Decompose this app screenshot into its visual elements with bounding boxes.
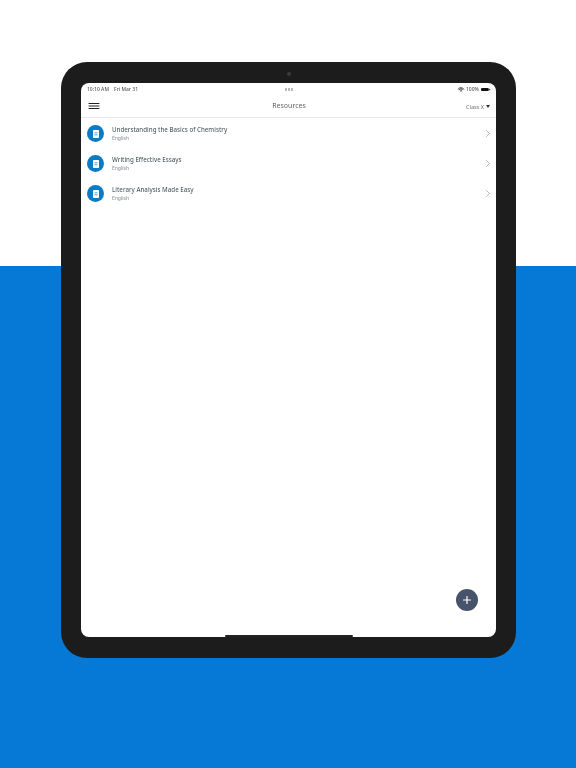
staticText: Resources <box>272 101 306 111</box>
button[interactable]: Literary Analysis Made Easy <box>81 178 496 208</box>
button[interactable]: Understanding the Basics of Chemistry <box>81 118 496 148</box>
staticText: Class X <box>466 103 484 110</box>
staticText: English <box>112 165 130 172</box>
staticText: Writing Effective Essays <box>112 155 182 163</box>
button[interactable]: Menu <box>85 97 103 115</box>
staticText: Understanding the Basics of Chemistry <box>112 125 228 133</box>
staticText: English <box>112 135 130 142</box>
staticText: Fri Mar 31 <box>114 86 138 93</box>
staticText: Literary Analysis Made Easy <box>112 185 194 193</box>
staticText: English <box>112 195 130 202</box>
button[interactable]: Writing Effective Essays <box>81 148 496 178</box>
button[interactable]: Class X <box>466 103 490 110</box>
staticText: 10:10 AM <box>87 86 109 93</box>
staticText: 100% <box>466 86 479 93</box>
button[interactable]: Add resource <box>456 589 478 611</box>
